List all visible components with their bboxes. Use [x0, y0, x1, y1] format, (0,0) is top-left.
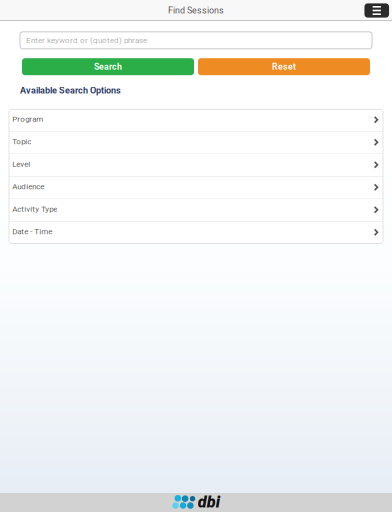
button[interactable]: Program: [9, 109, 383, 131]
staticText: Activity Type: [12, 204, 57, 214]
staticText: Reset: [272, 61, 296, 72]
button[interactable]: Menu: [362, 0, 391, 20]
button[interactable]: Activity Type: [9, 199, 383, 221]
staticText: Audience: [12, 182, 44, 191]
button[interactable]: Date - Time: [9, 222, 383, 243]
staticText: Date - Time: [12, 227, 52, 236]
staticText: dbi: [198, 492, 220, 512]
button[interactable]: Search: [22, 58, 194, 75]
staticText: Search: [94, 61, 122, 72]
button[interactable]: Level: [9, 154, 383, 176]
staticText: Find Sessions: [168, 5, 224, 16]
staticText: Enter keyword or (quoted) phrase: [26, 36, 147, 45]
staticText: Level: [12, 159, 30, 169]
button[interactable]: Reset: [198, 58, 370, 75]
staticText: Program: [12, 114, 43, 124]
button[interactable]: Audience: [9, 177, 383, 198]
staticText: Available Search Options: [20, 85, 121, 96]
staticText: Topic: [12, 137, 31, 146]
button[interactable]: Topic: [9, 132, 383, 153]
